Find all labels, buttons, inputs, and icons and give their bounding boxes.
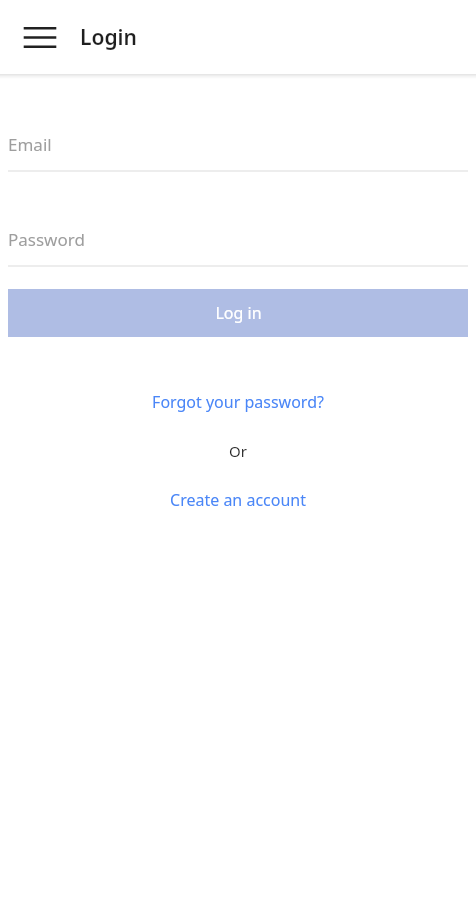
staticText: Email bbox=[8, 133, 52, 156]
button[interactable]: Forgot your password? bbox=[0, 389, 476, 415]
button[interactable]: Password bbox=[8, 222, 468, 267]
staticText: Create an account bbox=[170, 489, 306, 511]
button[interactable]: Log in bbox=[8, 289, 468, 337]
staticText: Or bbox=[229, 441, 247, 461]
staticText: Password bbox=[8, 228, 85, 251]
button[interactable]: Open navigation menu bbox=[12, 9, 68, 65]
staticText: Forgot your password? bbox=[152, 391, 324, 413]
staticText: Log in bbox=[215, 302, 262, 324]
staticText: Login bbox=[80, 23, 137, 52]
button[interactable]: Email bbox=[8, 127, 468, 172]
button[interactable]: Create an account bbox=[0, 487, 476, 513]
